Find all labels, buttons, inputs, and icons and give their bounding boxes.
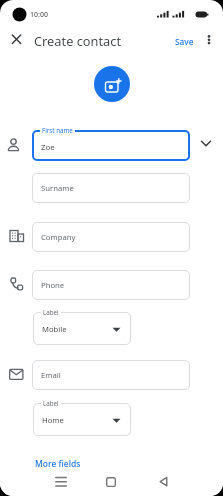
staticText: Label bbox=[43, 399, 59, 407]
button[interactable] bbox=[199, 30, 219, 51]
staticText: First name bbox=[42, 126, 73, 134]
button[interactable]: Email bbox=[32, 360, 190, 390]
staticText: Home bbox=[42, 415, 64, 425]
staticText: Mobile bbox=[42, 324, 67, 334]
button[interactable]: More fields bbox=[35, 458, 81, 470]
button[interactable]: Company bbox=[32, 222, 190, 252]
staticText: Save bbox=[175, 36, 194, 47]
button[interactable]: Save bbox=[165, 31, 203, 51]
staticText: Label bbox=[43, 308, 59, 316]
staticText: 10:00 bbox=[30, 10, 48, 20]
button[interactable]: Mobile bbox=[33, 312, 131, 345]
button[interactable] bbox=[196, 133, 218, 157]
button[interactable] bbox=[91, 470, 131, 496]
button[interactable] bbox=[144, 470, 184, 496]
button[interactable] bbox=[32, 130, 190, 161]
button[interactable] bbox=[41, 470, 81, 496]
button[interactable]: Surname bbox=[32, 173, 190, 203]
button[interactable] bbox=[4, 31, 29, 51]
button[interactable]: Home bbox=[33, 403, 131, 436]
button[interactable]: Phone bbox=[32, 270, 190, 300]
staticText: Company bbox=[41, 232, 76, 242]
button[interactable] bbox=[94, 66, 130, 102]
staticText: Surname bbox=[41, 183, 74, 193]
staticText: Zoe bbox=[41, 142, 55, 153]
staticText: Phone bbox=[41, 280, 65, 290]
staticText: Email bbox=[41, 370, 61, 380]
staticText: Create contact bbox=[34, 32, 122, 49]
